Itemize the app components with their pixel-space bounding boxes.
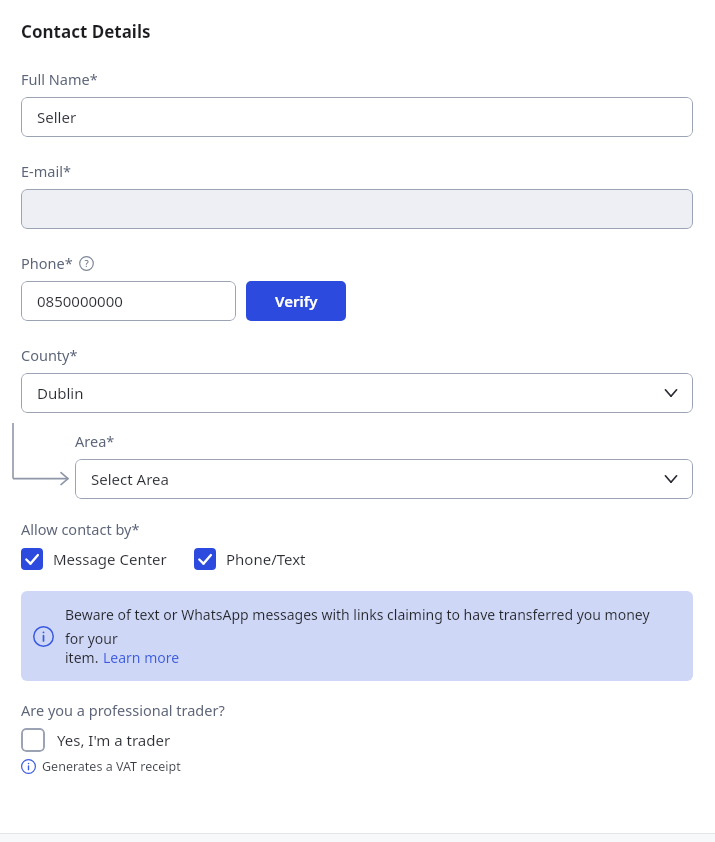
- staticText: E-mail*: [21, 161, 71, 181]
- staticText: ?: [84, 257, 89, 270]
- staticText: Allow contact by*: [21, 519, 140, 539]
- staticText: item.: [65, 648, 103, 667]
- button[interactable]: Verify: [246, 281, 346, 321]
- staticText: Verify: [275, 291, 318, 311]
- staticText: Area*: [75, 431, 115, 451]
- staticText: Beware of text or WhatsApp messages with…: [65, 605, 667, 648]
- staticText: Are you a professional trader?: [21, 700, 225, 720]
- staticText: Contact Details: [21, 20, 151, 43]
- button[interactable]: Message Center: [21, 548, 167, 570]
- button[interactable]: Learn more: [103, 648, 180, 667]
- staticText: Phone*: [21, 253, 73, 273]
- staticText: 0850000000: [37, 291, 224, 311]
- staticText: County*: [21, 345, 78, 365]
- staticText: Phone/Text: [226, 549, 306, 569]
- button[interactable]: 0850000000: [21, 281, 236, 321]
- staticText: Generates a VAT receipt: [42, 758, 181, 775]
- button[interactable]: Phone/Text: [194, 548, 306, 570]
- button[interactable]: Dublin: [21, 373, 693, 413]
- button[interactable]: Seller: [21, 97, 693, 137]
- staticText: Message Center: [53, 549, 167, 569]
- button[interactable]: [21, 189, 693, 229]
- button[interactable]: Select Area: [75, 459, 693, 499]
- button[interactable]: Yes, I'm a trader: [21, 728, 171, 752]
- staticText: Select Area: [91, 469, 661, 489]
- staticText: Dublin: [37, 383, 661, 403]
- button[interactable]: Phone help: [79, 256, 94, 271]
- staticText: Seller: [37, 107, 681, 127]
- staticText: Yes, I'm a trader: [57, 730, 171, 750]
- staticText: Full Name*: [21, 69, 98, 89]
